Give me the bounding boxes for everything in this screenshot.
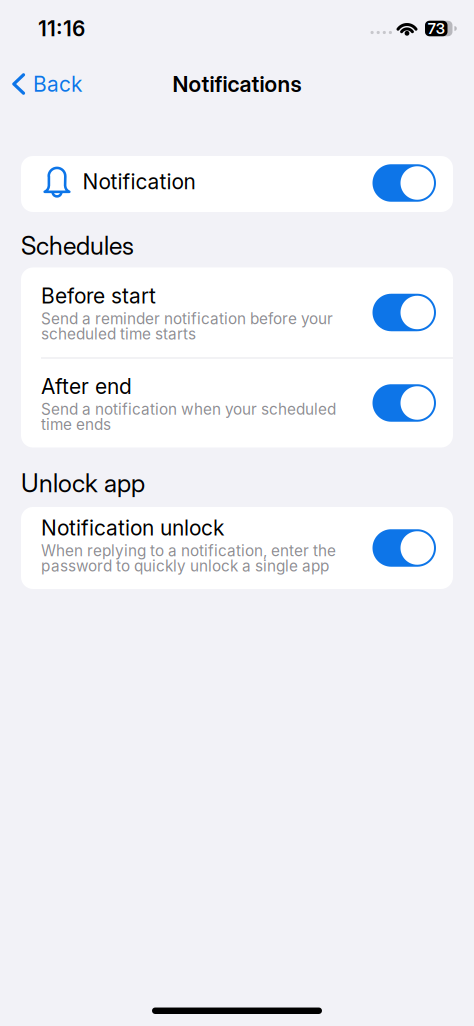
staticText: Notifications: [172, 71, 301, 97]
button[interactable]: After end: [372, 384, 436, 422]
staticText: 11:16: [38, 16, 85, 41]
button[interactable]: Notification unlock: [372, 529, 436, 567]
staticText: Back: [33, 72, 82, 96]
staticText: Unlock app: [21, 468, 145, 498]
staticText: Send a reminder notification before your…: [41, 311, 333, 342]
staticText: Before start: [41, 283, 156, 308]
staticText: When replying to a notification, enter t…: [41, 543, 336, 574]
staticText: Notification: [82, 169, 195, 194]
staticText: Notification unlock: [41, 515, 224, 540]
button[interactable]: Back: [0, 72, 82, 96]
button[interactable]: Before start: [372, 294, 436, 331]
staticText: 73: [428, 20, 445, 37]
staticText: Schedules: [21, 231, 134, 260]
staticText: Send a notification when your scheduled …: [41, 402, 336, 432]
staticText: After end: [41, 374, 132, 399]
button[interactable]: Notification: [372, 164, 436, 202]
